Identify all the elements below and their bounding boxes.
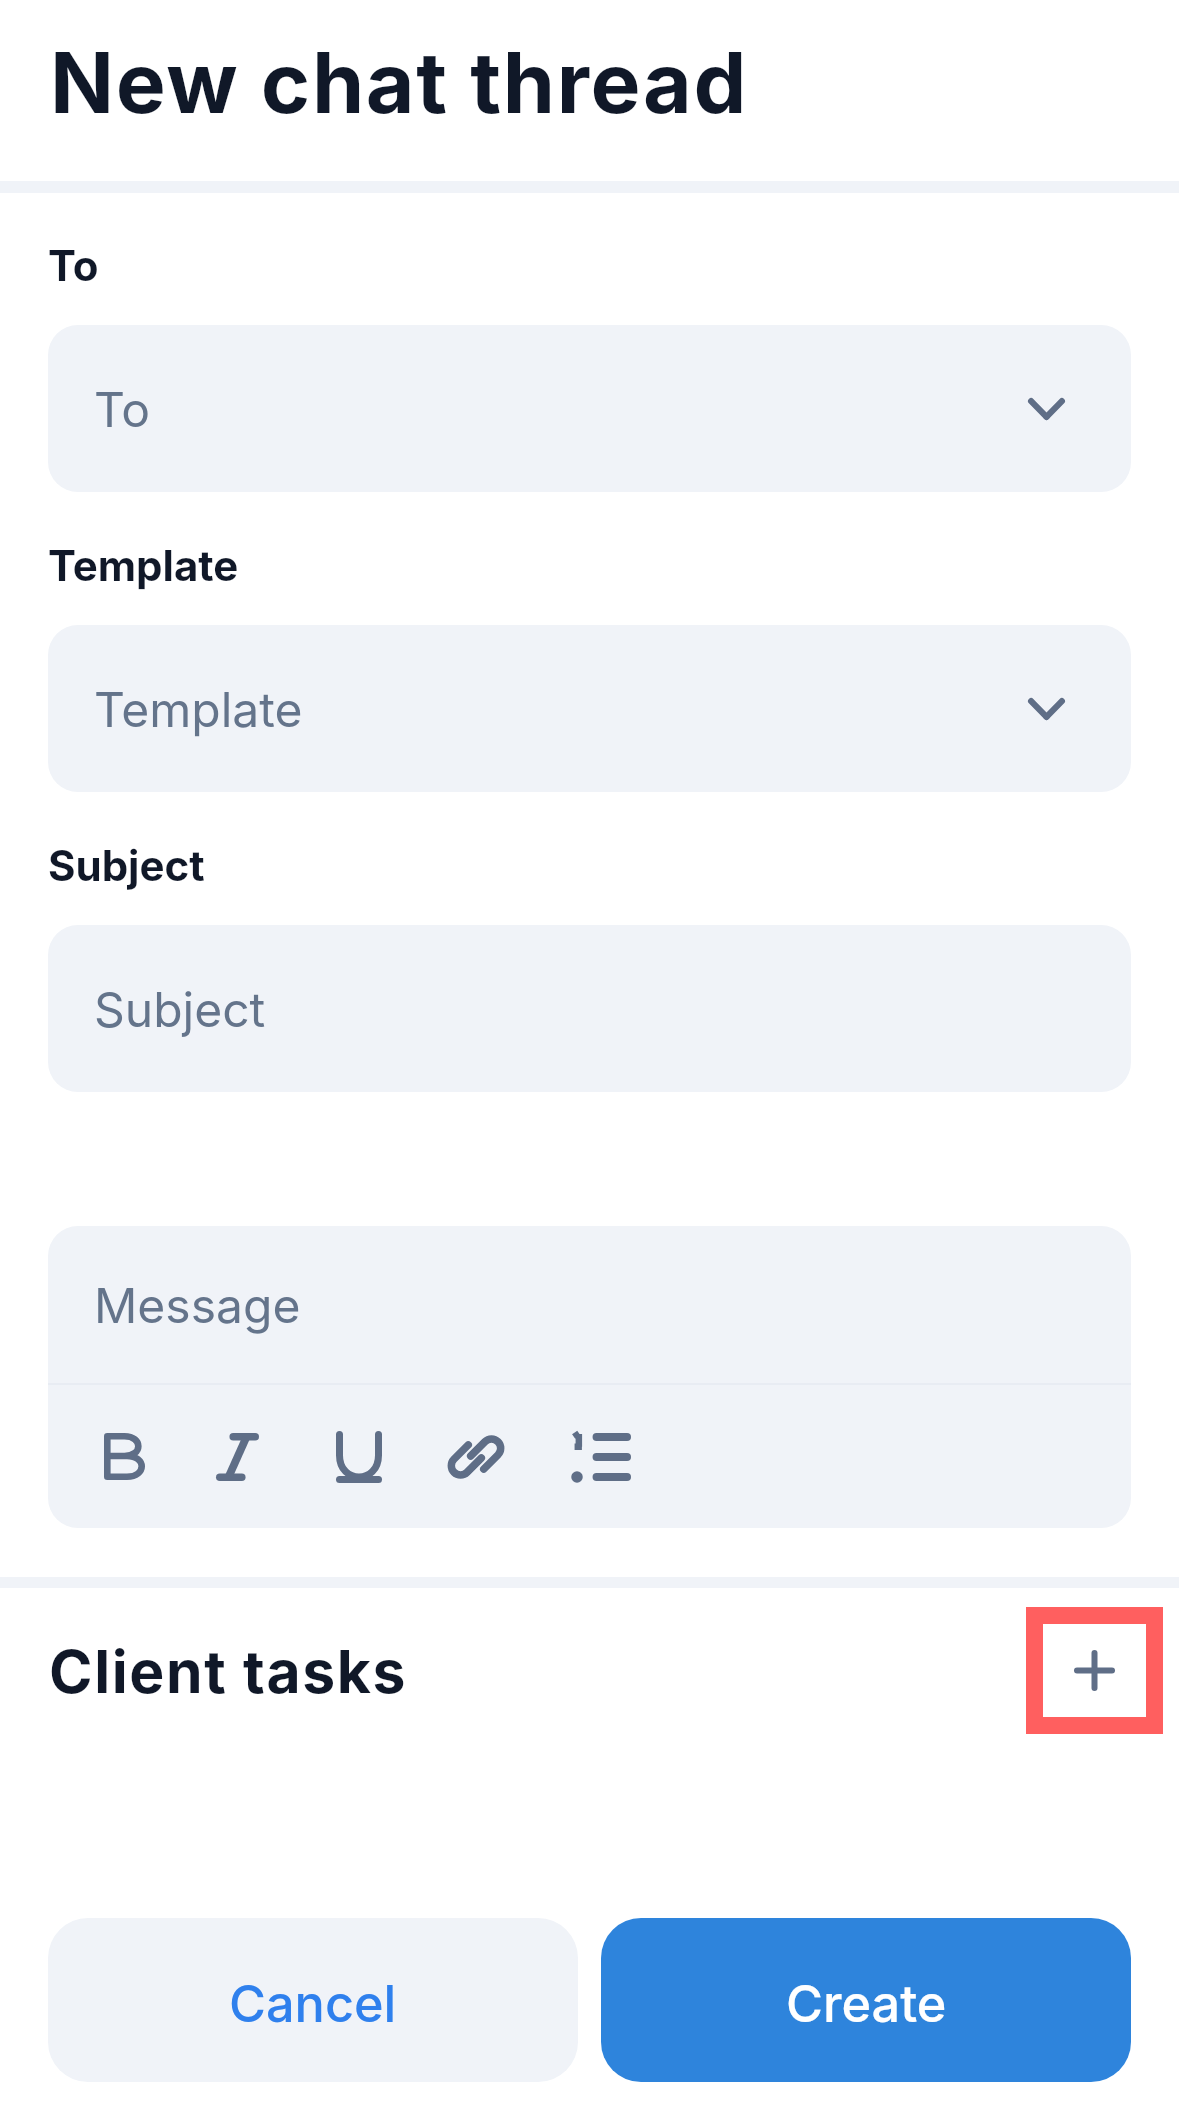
staticText: To [94,380,151,438]
button[interactable]: Bold [66,1385,183,1528]
button[interactable]: Cancel [48,1918,578,2082]
staticText: New chat thread [50,32,749,134]
button[interactable]: Add client task [1043,1624,1146,1717]
staticText: To [48,240,99,291]
staticText: Template [48,540,239,591]
staticText: Message [94,1276,301,1334]
button[interactable]: To [48,325,1131,492]
button[interactable]: Create [601,1918,1131,2082]
button[interactable]: Template [48,625,1131,792]
button[interactable]: Underline [300,1385,417,1528]
button[interactable]: Message [48,1226,1131,1383]
staticText: Template [94,680,303,738]
button[interactable]: Italic [183,1385,300,1528]
button[interactable]: Link [417,1385,534,1528]
staticText: Cancel [229,1973,397,2034]
staticText: Client tasks [49,1636,408,1707]
button[interactable]: Subject [48,925,1131,1092]
staticText: Subject [48,840,205,891]
staticText: Subject [94,980,266,1038]
staticText: Create [786,1973,947,2034]
button[interactable]: Numbered list [534,1385,651,1528]
